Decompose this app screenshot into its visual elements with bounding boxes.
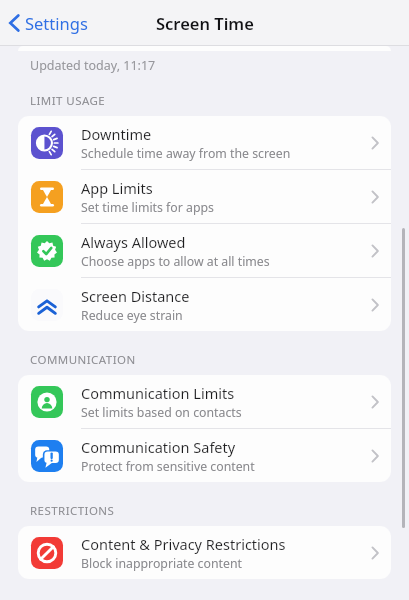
other: Content and Privacy Restrictions (31, 537, 63, 569)
staticText: Content & Privacy Restrictions (81, 534, 286, 554)
other: Downtime (31, 127, 63, 159)
staticText: Updated today, 11:17 (30, 57, 156, 74)
staticText: Settings (25, 12, 88, 34)
other: Always Allowed (31, 235, 63, 267)
staticText: Choose apps to allow at all times (81, 253, 270, 270)
other: Communication Safety (31, 440, 63, 472)
button[interactable]: Communication Limits (18, 375, 391, 428)
button[interactable]: Settings (5, 7, 92, 39)
button[interactable]: Content and Privacy Restrictions (18, 526, 391, 579)
other: Communication Limits (31, 386, 63, 418)
other: App Limits (31, 181, 63, 213)
staticText: Schedule time away from the screen (81, 145, 291, 162)
button[interactable]: Communication Safety (18, 429, 391, 482)
button[interactable]: Always Allowed (18, 224, 391, 277)
staticText: Communication Limits (81, 383, 235, 403)
button[interactable]: Downtime (18, 116, 391, 169)
button[interactable]: Screen Distance (18, 278, 391, 331)
other: Screen Distance (31, 289, 63, 321)
button[interactable]: App Limits (18, 170, 391, 223)
staticText: Block inappropriate content (81, 555, 242, 572)
staticText: Communication Safety (81, 437, 236, 457)
staticText: Screen Time (156, 12, 254, 34)
staticText: Set limits based on contacts (81, 404, 242, 421)
staticText: Protect from sensitive content (81, 458, 255, 475)
staticText: Set time limits for apps (81, 199, 214, 216)
staticText: Downtime (81, 124, 152, 144)
staticText: RESTRICTIONS (30, 503, 115, 519)
staticText: Screen Distance (81, 286, 190, 306)
staticText: Always Allowed (81, 232, 186, 252)
staticText: COMMUNICATION (30, 352, 136, 368)
staticText: LIMIT USAGE (30, 93, 106, 109)
staticText: App Limits (81, 178, 153, 198)
staticText: Reduce eye strain (81, 307, 183, 324)
